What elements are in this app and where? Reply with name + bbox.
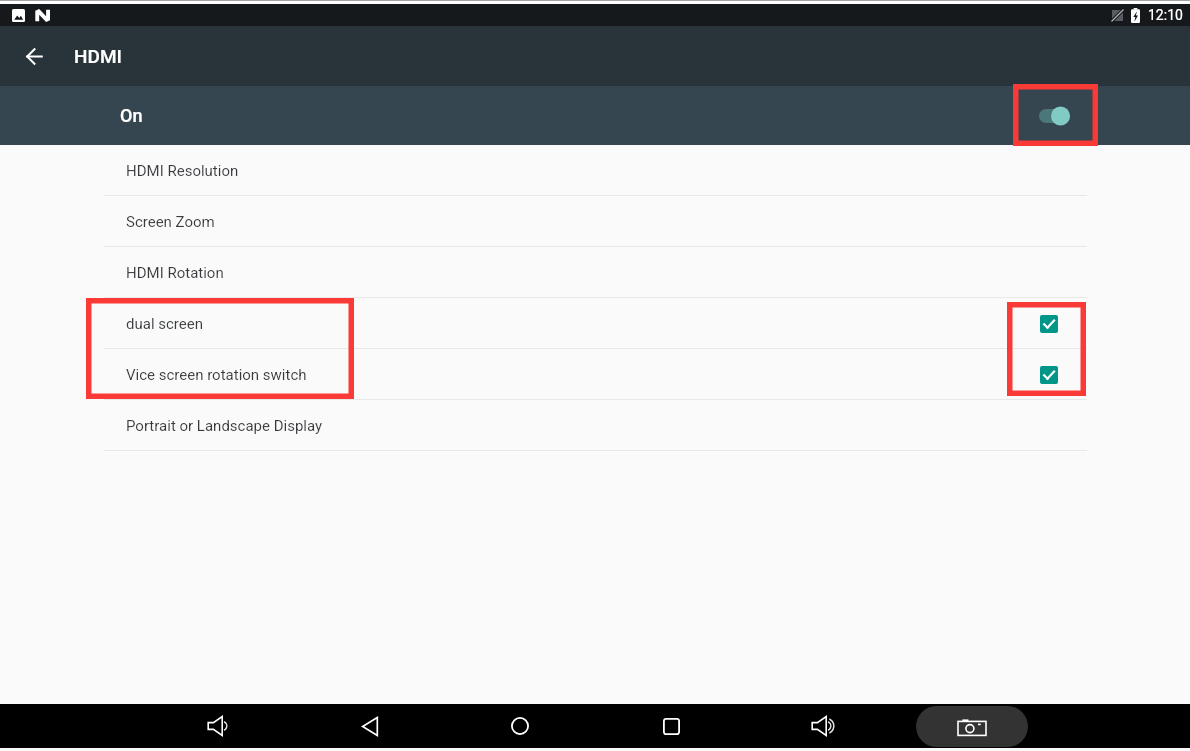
staticText: On bbox=[120, 105, 143, 126]
staticText: HDMI Rotation bbox=[126, 264, 224, 282]
button[interactable]: Volume up bbox=[800, 704, 844, 748]
button[interactable]: HDMI Resolution bbox=[0, 145, 1190, 196]
button[interactable]: Volume down bbox=[196, 704, 240, 748]
button[interactable]: Recents bbox=[649, 704, 693, 748]
button[interactable]: Portrait or Landscape Display bbox=[0, 400, 1190, 451]
button[interactable]: Vice screen rotation switch bbox=[0, 349, 1190, 400]
staticText: HDMI Resolution bbox=[126, 162, 239, 180]
staticText: dual screen bbox=[126, 315, 203, 333]
button[interactable]: dual screen bbox=[0, 298, 1190, 349]
button[interactable]: Vice screen rotation switch bbox=[1031, 357, 1067, 393]
staticText: Portrait or Landscape Display bbox=[126, 417, 323, 435]
button[interactable]: Back bbox=[348, 704, 392, 748]
button[interactable]: dual screen bbox=[1031, 306, 1067, 342]
staticText: 12:10 bbox=[1148, 7, 1183, 23]
button[interactable]: Home bbox=[498, 704, 542, 748]
button[interactable]: Screenshot bbox=[916, 706, 1028, 747]
staticText: Screen Zoom bbox=[126, 213, 215, 231]
button[interactable]: HDMI Rotation bbox=[0, 247, 1190, 298]
button[interactable]: Navigate up bbox=[10, 32, 58, 80]
staticText: Vice screen rotation switch bbox=[126, 366, 307, 384]
button[interactable]: Screen Zoom bbox=[0, 196, 1190, 247]
button[interactable]: On bbox=[0, 86, 1190, 145]
staticText: HDMI bbox=[74, 45, 122, 67]
button[interactable]: HDMI on/off bbox=[1032, 94, 1076, 138]
